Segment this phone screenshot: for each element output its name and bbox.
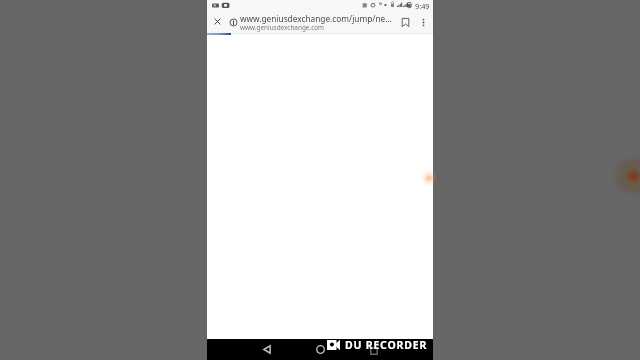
button[interactable]: Bookmark: [396, 12, 414, 33]
button[interactable]: DU Recorder floating button: [421, 170, 437, 186]
staticText: 9:49: [415, 1, 430, 11]
button[interactable]: Site information: [225, 12, 241, 33]
staticText: www.geniusdexchange.com: [240, 23, 325, 32]
button[interactable]: www.geniusdexchange.com/jump/ne…: [240, 12, 396, 33]
button[interactable]: DU Recorder: [614, 157, 640, 195]
staticText: www.geniusdexchange.com/jump/ne…: [240, 13, 392, 24]
button[interactable]: Home: [308, 339, 332, 360]
button[interactable]: Back: [254, 339, 279, 360]
button[interactable]: Recents: [363, 340, 385, 360]
button[interactable]: More options: [415, 12, 432, 33]
button[interactable]: Close: [208, 11, 227, 32]
staticText: DU RECORDER: [345, 338, 428, 352]
